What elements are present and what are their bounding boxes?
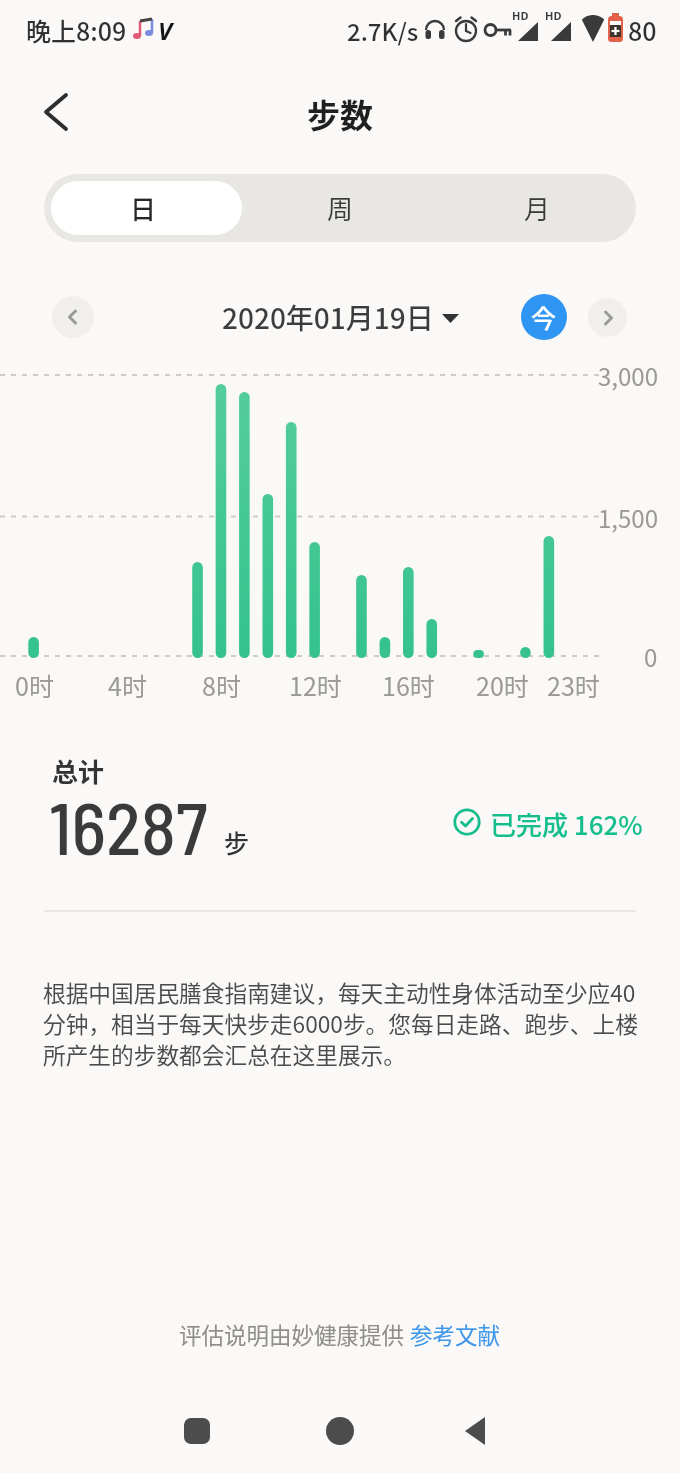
staticText: 已完成 162%: [490, 805, 643, 839]
staticText: 今: [531, 299, 557, 335]
button[interactable]: 已完成 162%: [490, 805, 643, 839]
staticText: 评估说明由妙健康提供: [179, 1318, 410, 1351]
button[interactable]: [184, 1418, 210, 1444]
staticText: 周: [327, 189, 354, 227]
staticText: 晚上8:09: [26, 12, 127, 48]
staticText: 日: [130, 189, 157, 227]
staticText: 16时: [382, 667, 435, 701]
staticText: 0: [644, 639, 658, 673]
staticText: 2020年01月19日: [222, 297, 434, 338]
staticText: 4时: [108, 667, 147, 701]
button[interactable]: [52, 296, 94, 338]
staticText: 根据中国居民膳食指南建议，每天主动性身体活动至少应40: [43, 976, 636, 1007]
button[interactable]: 月: [439, 174, 636, 242]
staticText: 分钟，相当于每天快步走6000步。您每日走路、跑步、上楼: [43, 1007, 638, 1038]
staticText: 步数: [307, 90, 373, 134]
button[interactable]: [588, 298, 627, 337]
button[interactable]: [40, 92, 80, 132]
staticText: 3,000: [598, 358, 658, 392]
button[interactable]: 2020年01月19日: [222, 297, 459, 338]
button[interactable]: 日: [44, 174, 242, 242]
staticText: 1,500: [598, 500, 658, 534]
button[interactable]: [326, 1417, 354, 1445]
staticText: 总计: [52, 752, 105, 786]
staticText: 8时: [202, 667, 241, 701]
staticText: 0时: [15, 667, 54, 701]
staticText: V: [158, 14, 173, 47]
staticText: 12时: [289, 667, 342, 701]
button[interactable]: 周: [242, 174, 439, 242]
staticText: HD: [545, 8, 562, 23]
staticText: 80: [628, 12, 657, 48]
staticText: 20时: [476, 667, 529, 701]
staticText: 2.7K/s: [347, 13, 419, 48]
staticText: HD: [512, 8, 529, 23]
staticText: 23时: [547, 667, 600, 701]
button[interactable]: 今: [521, 294, 567, 340]
button[interactable]: 参考文献: [410, 1318, 501, 1351]
staticText: 16287: [49, 782, 208, 860]
staticText: 月: [524, 189, 551, 227]
staticText: 参考文献: [410, 1318, 501, 1351]
button[interactable]: [462, 1416, 492, 1446]
staticText: 所产生的步数都会汇总在这里展示。: [43, 1038, 406, 1069]
staticText: 步: [224, 824, 250, 858]
